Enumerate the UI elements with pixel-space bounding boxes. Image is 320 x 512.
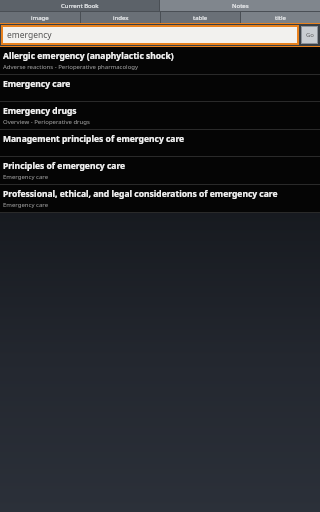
staticText: Emergency care (3, 201, 49, 209)
staticText: Go (306, 31, 314, 39)
button[interactable]: Professional, ethical, and legal conside… (0, 185, 320, 212)
staticText: image (31, 14, 49, 22)
button[interactable]: Principles of emergency care (0, 157, 320, 184)
staticText: index (113, 14, 129, 22)
staticText: emergency (7, 29, 52, 41)
button[interactable]: Notes (160, 0, 320, 11)
button[interactable]: Emergency care (0, 75, 320, 101)
staticText: title (275, 14, 286, 22)
staticText: Emergency care (3, 78, 71, 90)
staticText: Emergency drugs (3, 105, 77, 117)
staticText: Allergic emergency (anaphylactic shock) (3, 50, 174, 62)
staticText: Emergency care (3, 173, 49, 181)
button[interactable]: Emergency drugs (0, 102, 320, 129)
staticText: Adverse reactions - Perioperative pharma… (3, 63, 139, 71)
button[interactable]: emergency (3, 27, 297, 43)
staticText: table (193, 14, 208, 22)
staticText: Professional, ethical, and legal conside… (3, 188, 278, 200)
button[interactable]: index (81, 12, 160, 23)
button[interactable]: Current Book (0, 0, 159, 11)
staticText: Management principles of emergency care (3, 133, 185, 145)
button[interactable]: title (241, 12, 320, 23)
staticText: Overview - Perioperative drugs (3, 118, 90, 126)
staticText: Principles of emergency care (3, 160, 126, 172)
button[interactable]: Go (301, 26, 318, 44)
staticText: Notes (232, 2, 249, 10)
button[interactable]: Management principles of emergency care (0, 130, 320, 156)
button[interactable]: Allergic emergency (anaphylactic shock) (0, 47, 320, 74)
button[interactable]: table (161, 12, 240, 23)
staticText: Current Book (61, 2, 99, 10)
button[interactable]: image (0, 12, 80, 23)
